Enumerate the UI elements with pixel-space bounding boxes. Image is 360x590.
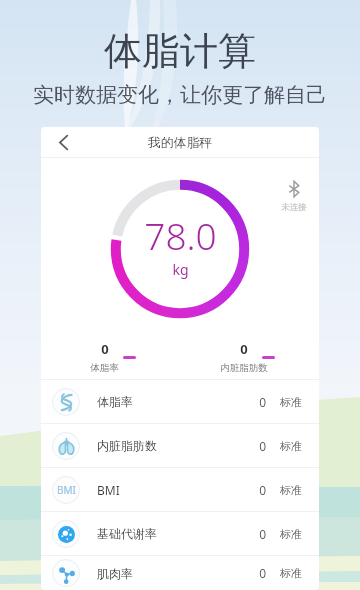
staticText: 标准 <box>280 439 302 453</box>
button[interactable]: 基础代谢率 <box>41 512 319 555</box>
staticText: 0 <box>259 526 266 542</box>
button[interactable]: BMI <box>41 468 319 511</box>
staticText: 我的体脂秤 <box>148 135 212 151</box>
staticText: 0 <box>259 438 266 454</box>
staticText: BMI <box>57 483 76 497</box>
staticText: 0 <box>101 340 109 358</box>
staticText: 未连接 <box>281 202 307 213</box>
staticText: 标准 <box>280 527 302 541</box>
staticText: 78.0 <box>144 210 217 260</box>
staticText: 内脏脂肪数 <box>97 438 259 453</box>
staticText: 体脂率 <box>97 394 259 409</box>
button[interactable]: 体脂率 <box>41 380 319 423</box>
staticText: 内脏脂肪数 <box>220 362 268 374</box>
staticText: kg <box>172 260 189 279</box>
staticText: BMI <box>97 482 259 498</box>
staticText: 肌肉率 <box>97 566 259 581</box>
button[interactable]: 内脏脂肪数 <box>41 424 319 467</box>
button[interactable]: Back <box>50 130 74 154</box>
staticText: 标准 <box>280 395 302 409</box>
staticText: 体脂率 <box>90 362 119 374</box>
staticText: 体脂计算 <box>0 27 360 75</box>
staticText: 0 <box>259 482 266 498</box>
staticText: 标准 <box>280 483 302 497</box>
staticText: 标准 <box>280 566 302 580</box>
staticText: 实时数据变化，让你更了解自己 <box>0 82 360 108</box>
staticText: 0 <box>259 394 266 410</box>
button[interactable]: 肌肉率 <box>41 556 319 590</box>
staticText: 基础代谢率 <box>97 526 259 541</box>
staticText: 0 <box>240 340 248 358</box>
staticText: 0 <box>259 565 266 581</box>
button[interactable]: Bluetooth status <box>281 181 307 213</box>
